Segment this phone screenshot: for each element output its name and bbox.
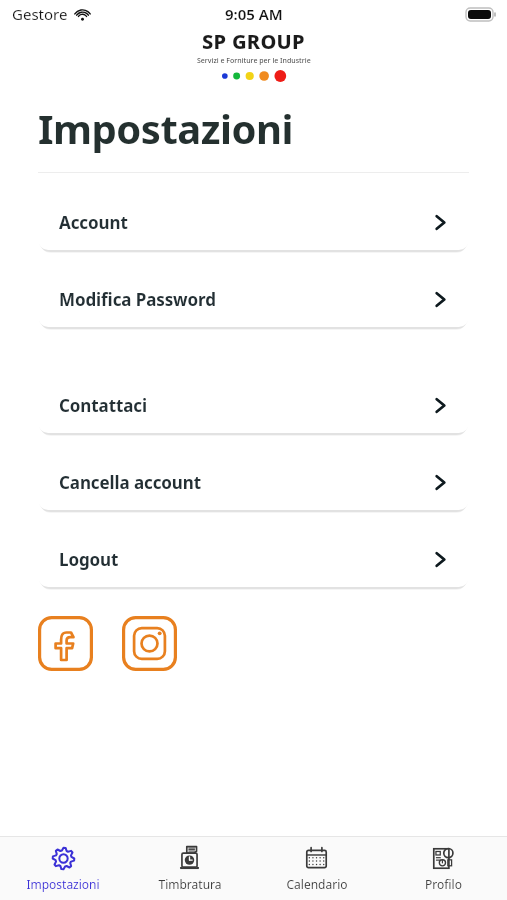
- staticText: Servizi e Forniture per le Industrie: [197, 56, 311, 66]
- button[interactable]: Cancella account: [38, 455, 469, 510]
- button[interactable]: Instagram: [122, 616, 177, 671]
- button[interactable]: Calendario: [253, 837, 380, 900]
- staticText: Impostazioni: [26, 876, 100, 892]
- staticText: Gestore: [12, 4, 68, 24]
- staticText: Timbratura: [158, 876, 222, 892]
- button[interactable]: Modifica Password: [38, 272, 469, 327]
- button[interactable]: Facebook: [38, 616, 93, 671]
- staticText: SP GROUP: [202, 28, 305, 55]
- staticText: 9:05 AM: [225, 4, 283, 24]
- button[interactable]: Profilo: [380, 837, 507, 900]
- staticText: Logout: [59, 548, 119, 571]
- staticText: Impostazioni: [38, 101, 293, 155]
- button[interactable]: Account: [38, 195, 469, 250]
- button[interactable]: Logout: [38, 532, 469, 587]
- staticText: Contattaci: [59, 394, 147, 417]
- button[interactable]: Impostazioni: [0, 837, 126, 900]
- staticText: Cancella account: [59, 471, 202, 494]
- staticText: Account: [59, 211, 128, 234]
- button[interactable]: Contattaci: [38, 378, 469, 433]
- staticText: Profilo: [425, 876, 462, 892]
- button[interactable]: Timbratura: [126, 837, 253, 900]
- staticText: Modifica Password: [59, 288, 216, 311]
- staticText: Calendario: [286, 876, 348, 892]
